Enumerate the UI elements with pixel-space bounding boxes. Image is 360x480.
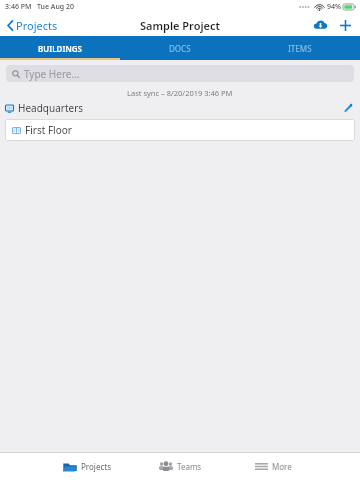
staticText: BUILDINGS <box>38 43 82 54</box>
staticText: Tue Aug 20 <box>37 2 74 12</box>
button[interactable]: Download <box>309 14 331 36</box>
button[interactable]: Projects <box>4 16 61 35</box>
button[interactable]: BUILDINGS <box>0 36 120 60</box>
staticText: 94% <box>327 2 341 12</box>
staticText: More <box>272 461 292 472</box>
staticText: Projects <box>81 461 111 472</box>
button[interactable]: Teams <box>134 453 227 480</box>
staticText: DOCS <box>169 43 191 54</box>
button[interactable]: Edit <box>340 100 356 116</box>
button[interactable]: Projects <box>40 453 134 480</box>
button[interactable]: ITEMS <box>240 36 360 60</box>
staticText: Teams <box>177 461 202 472</box>
button[interactable]: Add <box>335 15 355 35</box>
button[interactable]: Headquarters <box>0 99 360 117</box>
staticText: Type Here... <box>24 67 80 81</box>
staticText: 3:46 PM <box>5 2 32 12</box>
staticText: Projects <box>16 18 58 33</box>
staticText: ITEMS <box>288 43 312 54</box>
staticText: Sample Project <box>140 18 220 33</box>
button[interactable]: Type Here... <box>6 65 354 82</box>
button[interactable]: More <box>227 453 320 480</box>
staticText: Headquarters <box>18 101 84 115</box>
staticText: Last sync – 8/20/2019 3:46 PM <box>127 88 233 98</box>
button[interactable]: DOCS <box>120 36 240 60</box>
button[interactable]: First Floor <box>5 119 355 141</box>
staticText: First Floor <box>25 123 72 137</box>
